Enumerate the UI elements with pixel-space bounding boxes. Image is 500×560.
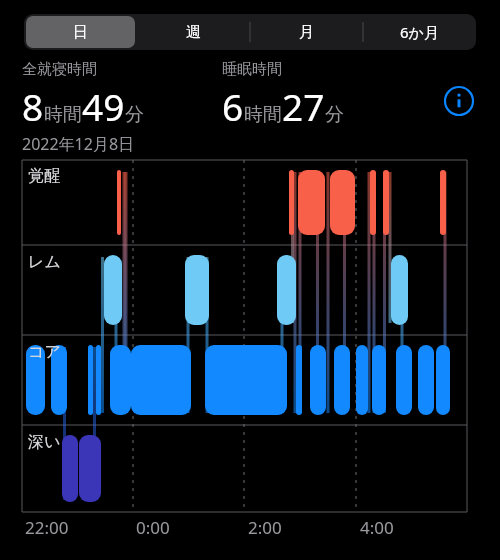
staticText: 時間: [244, 103, 282, 127]
staticText: 49: [82, 81, 125, 131]
staticText: 月: [299, 23, 314, 42]
button[interactable]: 週: [139, 16, 248, 48]
staticText: 4:00: [360, 516, 394, 539]
staticText: レム: [28, 252, 61, 272]
button[interactable]: 月: [252, 16, 361, 48]
staticText: 6か月: [400, 22, 439, 42]
staticText: 分: [125, 103, 144, 127]
staticText: 22:00: [25, 516, 69, 539]
staticText: 全就寝時間: [22, 60, 97, 79]
staticText: 8: [22, 81, 44, 131]
button[interactable]: 詳細情報: [443, 85, 475, 117]
staticText: 深い: [28, 432, 61, 452]
staticText: 27: [282, 81, 325, 131]
staticText: 2:00: [248, 516, 282, 539]
staticText: 睡眠時間: [222, 60, 282, 79]
staticText: 覚醒: [28, 166, 60, 186]
staticText: 0:00: [136, 516, 170, 539]
staticText: 6: [222, 81, 244, 131]
button[interactable]: 6か月: [365, 16, 474, 48]
staticText: 2022年12月8日: [22, 133, 135, 155]
staticText: 時間: [44, 103, 82, 127]
staticText: 日: [73, 23, 88, 42]
staticText: 週: [186, 23, 201, 42]
staticText: 分: [325, 103, 344, 127]
button[interactable]: 日: [26, 16, 135, 48]
staticText: コア: [28, 342, 61, 362]
